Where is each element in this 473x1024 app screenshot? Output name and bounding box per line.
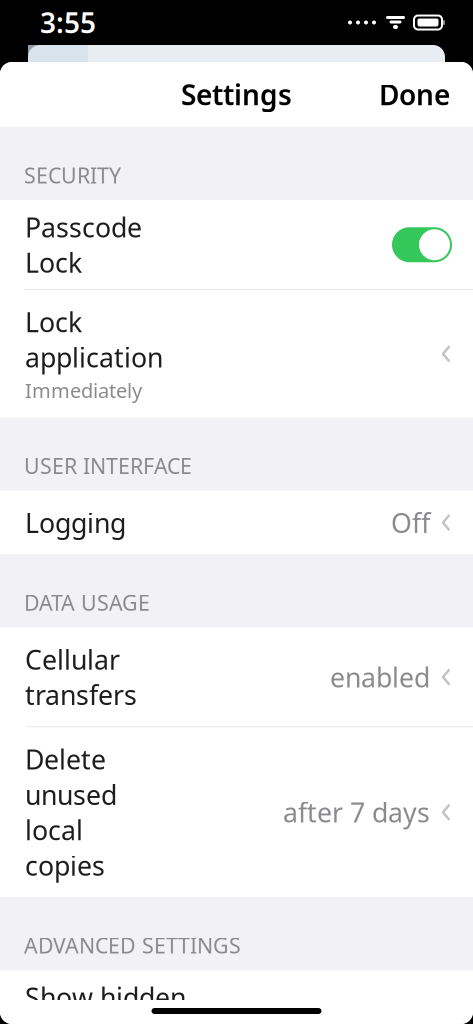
staticText: Done [379,76,450,113]
staticText: USER INTERFACE [24,451,192,480]
button[interactable]: Lock application [0,290,473,418]
staticText: SECURITY [24,161,121,189]
staticText: Logging [25,505,126,540]
staticText: Show hidden files and folders [25,979,186,1024]
staticText: Lock application [25,304,163,375]
button[interactable]: Done [367,68,462,121]
staticText: Cellular transfers [25,642,137,712]
staticText: ADVANCED SETTINGS [24,931,241,959]
button[interactable]: Passcode Lock [0,200,473,290]
staticText: Passcode Lock [25,209,142,280]
button[interactable]: Delete unused local copies [0,727,473,897]
button[interactable]: Logging [0,491,473,554]
staticText: DATA USAGE [24,588,150,617]
button[interactable]: Cellular transfers [0,628,473,727]
staticText: after 7 days [283,795,430,830]
staticText: 3:55 [40,4,96,41]
staticText: Delete unused local copies [25,741,117,883]
button[interactable]: Show hidden files and folders [0,970,473,1024]
staticText: Immediately [25,377,142,404]
staticText: enabled [330,659,430,695]
staticText: Settings [181,76,292,113]
staticText: Off [391,505,430,540]
